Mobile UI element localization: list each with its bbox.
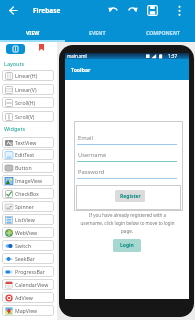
staticText: COMPONENT bbox=[146, 29, 180, 36]
staticText: username, click login below to move to l… bbox=[80, 220, 175, 226]
staticText: Scroll(H) bbox=[15, 99, 36, 106]
staticText: ListView bbox=[15, 216, 35, 223]
staticText: AdView bbox=[15, 294, 33, 301]
button[interactable]: Scroll(V) bbox=[2, 111, 54, 122]
staticText: page. bbox=[121, 228, 133, 234]
button[interactable]: MapView bbox=[2, 305, 54, 316]
staticText: 1:37 bbox=[168, 53, 178, 59]
button[interactable]: VIEW bbox=[0, 22, 65, 42]
button[interactable]: AdView bbox=[2, 292, 54, 303]
button[interactable]: EditText bbox=[2, 149, 54, 160]
staticText: CheckBox bbox=[15, 190, 39, 197]
button[interactable]: Spinner bbox=[2, 201, 54, 212]
staticText: EVENT bbox=[89, 29, 106, 36]
staticText: Password bbox=[78, 168, 105, 176]
staticText: Linear(H) bbox=[15, 72, 38, 79]
staticText: Register bbox=[120, 193, 141, 200]
button[interactable] bbox=[39, 44, 44, 51]
staticText: WebView bbox=[15, 229, 38, 236]
button[interactable] bbox=[9, 6, 18, 15]
button[interactable]: ProgressBar bbox=[2, 266, 54, 277]
staticText: ProgressBar bbox=[15, 268, 45, 275]
button[interactable] bbox=[6, 44, 25, 54]
staticText: Username bbox=[78, 151, 107, 159]
button[interactable]: CalendarView bbox=[2, 279, 54, 290]
staticText: CalendarView bbox=[15, 281, 49, 288]
button[interactable]: Login bbox=[113, 239, 141, 252]
staticText: EditText bbox=[15, 151, 35, 158]
staticText: Button bbox=[15, 164, 32, 171]
button[interactable]: Linear(V) bbox=[2, 84, 54, 95]
button[interactable] bbox=[175, 5, 184, 17]
button[interactable] bbox=[127, 5, 138, 16]
button[interactable]: CheckBox bbox=[2, 188, 54, 199]
staticText: ImageView bbox=[15, 177, 42, 184]
button[interactable]: TextView bbox=[2, 137, 54, 148]
button[interactable]: Button bbox=[2, 162, 54, 173]
staticText: main.xml bbox=[67, 53, 87, 59]
button[interactable]: COMPONENT bbox=[130, 22, 195, 42]
button[interactable]: Scroll(H) bbox=[2, 97, 54, 108]
button[interactable]: Register bbox=[115, 190, 145, 202]
staticText: If you have already registered with a bbox=[89, 212, 166, 218]
staticText: Scroll(V) bbox=[15, 113, 35, 120]
staticText: Firebase bbox=[33, 6, 61, 15]
button[interactable]: EVENT bbox=[65, 22, 130, 42]
button[interactable]: Switch bbox=[2, 240, 54, 251]
staticText: Toolbar bbox=[71, 66, 91, 73]
button[interactable]: ImageView bbox=[2, 175, 54, 186]
staticText: SeekBar bbox=[15, 255, 35, 262]
staticText: Email bbox=[78, 134, 93, 142]
button[interactable]: SeekBar bbox=[2, 253, 54, 264]
staticText: Spinner bbox=[15, 203, 34, 210]
button[interactable] bbox=[147, 5, 158, 16]
staticText: MapView bbox=[15, 307, 38, 314]
staticText: TextView bbox=[15, 139, 37, 146]
button[interactable]: ListView bbox=[2, 214, 54, 225]
staticText: Switch bbox=[15, 242, 31, 249]
button[interactable]: Linear(H) bbox=[2, 70, 54, 81]
staticText: Widgets bbox=[4, 125, 26, 132]
button[interactable] bbox=[108, 5, 119, 16]
button[interactable]: WebView bbox=[2, 227, 54, 238]
staticText: Layouts bbox=[4, 60, 25, 67]
staticText: VIEW bbox=[26, 29, 40, 36]
staticText: Login bbox=[120, 242, 134, 249]
staticText: Linear(V) bbox=[15, 86, 37, 93]
